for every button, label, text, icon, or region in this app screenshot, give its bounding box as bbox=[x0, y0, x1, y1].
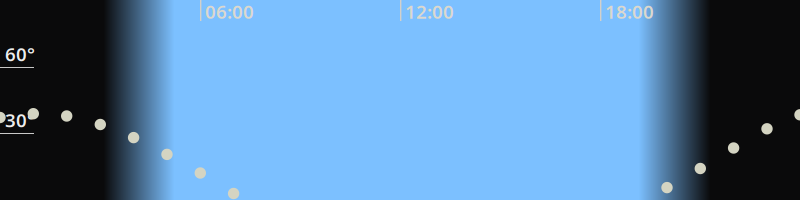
staticText: 18:00 bbox=[605, 0, 654, 24]
staticText: 12:00 bbox=[405, 0, 454, 24]
staticText: 60° bbox=[5, 41, 35, 66]
staticText: 06:00 bbox=[205, 0, 254, 24]
staticText: 30° bbox=[5, 107, 35, 132]
